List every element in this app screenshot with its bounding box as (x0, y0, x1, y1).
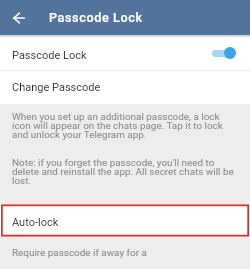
staticText: Change Passcode (12, 81, 101, 94)
staticText: When you set up an additional passcode, … (12, 111, 234, 141)
staticText: Note: if you forget the passcode, you'll… (12, 157, 234, 187)
staticText: Require passcode if away for a (12, 247, 147, 259)
button[interactable]: Auto-lock (0, 205, 250, 236)
staticText: Auto-lock (12, 216, 59, 229)
button[interactable]: Passcode Lock (0, 38, 250, 72)
button[interactable]: Back (8, 8, 29, 28)
button[interactable]: Change Passcode (0, 71, 250, 104)
staticText: Passcode Lock (49, 10, 143, 25)
staticText: Passcode Lock (12, 49, 87, 62)
